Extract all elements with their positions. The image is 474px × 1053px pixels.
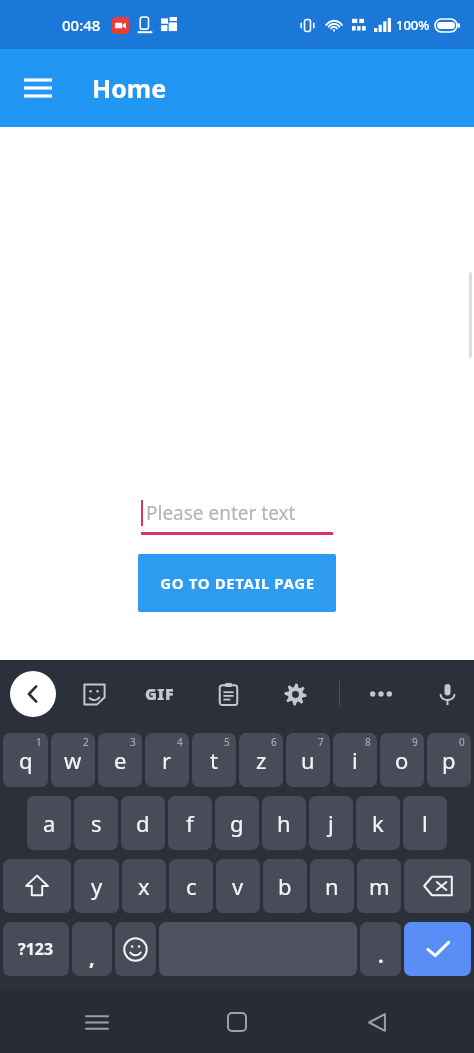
button[interactable]: More options: [358, 671, 404, 717]
staticText: 3: [130, 735, 136, 749]
staticText: f: [186, 808, 194, 838]
button[interactable]: r: [145, 733, 189, 787]
staticText: m: [369, 871, 390, 901]
staticText: 00:48: [62, 15, 101, 35]
staticText: v: [232, 871, 244, 901]
staticText: 7: [318, 735, 324, 749]
button[interactable]: j: [309, 796, 353, 850]
button[interactable]: GIF: [137, 671, 183, 717]
button[interactable]: x: [122, 859, 166, 913]
button[interactable]: y: [74, 859, 119, 913]
button[interactable]: Emoji: [115, 922, 156, 976]
staticText: b: [278, 871, 292, 901]
staticText: l: [422, 808, 428, 838]
staticText: k: [372, 808, 384, 838]
button[interactable]: Voice input: [424, 671, 470, 717]
button[interactable]: Keyboard settings: [272, 671, 318, 717]
button[interactable]: Comma: [72, 922, 112, 976]
staticText: n: [325, 871, 339, 901]
staticText: r: [162, 745, 172, 775]
button[interactable]: i: [333, 733, 377, 787]
button[interactable]: s: [74, 796, 118, 850]
button[interactable]: Open navigation drawer: [12, 62, 64, 114]
staticText: q: [19, 745, 33, 775]
staticText: g: [230, 808, 244, 838]
staticText: z: [256, 745, 267, 775]
button[interactable]: l: [403, 796, 447, 850]
button[interactable]: t: [192, 733, 236, 787]
staticText: i: [352, 745, 358, 775]
button[interactable]: n: [310, 859, 354, 913]
button[interactable]: Enter: [404, 922, 471, 976]
staticText: 2: [83, 735, 89, 749]
staticText: 100%: [396, 16, 430, 34]
staticText: o: [395, 745, 409, 775]
staticText: s: [91, 808, 102, 838]
button[interactable]: f: [168, 796, 212, 850]
staticText: 6: [271, 735, 277, 749]
staticText: d: [136, 808, 150, 838]
staticText: 0: [459, 735, 465, 749]
staticText: j: [328, 808, 334, 838]
button[interactable]: Back: [351, 996, 403, 1048]
button[interactable]: u: [286, 733, 330, 787]
button[interactable]: h: [262, 796, 306, 850]
staticText: Home: [92, 71, 167, 105]
button[interactable]: m: [357, 859, 401, 913]
staticText: Please enter text: [146, 500, 296, 526]
staticText: GO TO DETAIL PAGE: [160, 573, 315, 593]
staticText: e: [114, 745, 127, 775]
button[interactable]: d: [121, 796, 165, 850]
button[interactable]: o: [380, 733, 424, 787]
staticText: x: [138, 871, 150, 901]
button[interactable]: w: [51, 733, 95, 787]
button[interactable]: z: [239, 733, 283, 787]
button[interactable]: GO TO DETAIL PAGE: [138, 554, 336, 612]
button[interactable]: Hide keyboard panel: [10, 671, 56, 717]
staticText: h: [277, 808, 291, 838]
button[interactable]: v: [216, 859, 260, 913]
button[interactable]: Clipboard: [205, 671, 251, 717]
button[interactable]: Period: [360, 922, 401, 976]
button[interactable]: e: [98, 733, 142, 787]
button[interactable]: Please enter text: [141, 491, 333, 535]
staticText: 1: [36, 735, 42, 749]
button[interactable]: k: [356, 796, 400, 850]
staticText: GIF: [145, 683, 175, 705]
button[interactable]: p: [427, 733, 471, 787]
staticText: 9: [412, 735, 418, 749]
staticText: ,: [89, 944, 95, 971]
staticText: ?123: [18, 938, 54, 960]
staticText: w: [64, 745, 82, 775]
button[interactable]: b: [263, 859, 307, 913]
staticText: y: [91, 871, 103, 901]
staticText: .: [378, 942, 384, 969]
staticText: 8: [365, 735, 371, 749]
staticText: t: [210, 745, 218, 775]
button[interactable]: Home: [211, 996, 263, 1048]
button[interactable]: Recent apps: [71, 996, 123, 1048]
button[interactable]: Symbols: [3, 922, 69, 976]
staticText: a: [43, 808, 56, 838]
button[interactable]: Stickers: [71, 671, 117, 717]
button[interactable]: Backspace: [404, 859, 471, 913]
button[interactable]: c: [169, 859, 213, 913]
staticText: 4: [177, 735, 183, 749]
button[interactable]: a: [27, 796, 71, 850]
button[interactable]: q: [3, 733, 48, 787]
staticText: u: [301, 745, 315, 775]
staticText: c: [186, 871, 197, 901]
button[interactable]: g: [215, 796, 259, 850]
staticText: 5: [224, 735, 230, 749]
staticText: p: [442, 745, 456, 775]
button[interactable]: Shift: [3, 859, 71, 913]
